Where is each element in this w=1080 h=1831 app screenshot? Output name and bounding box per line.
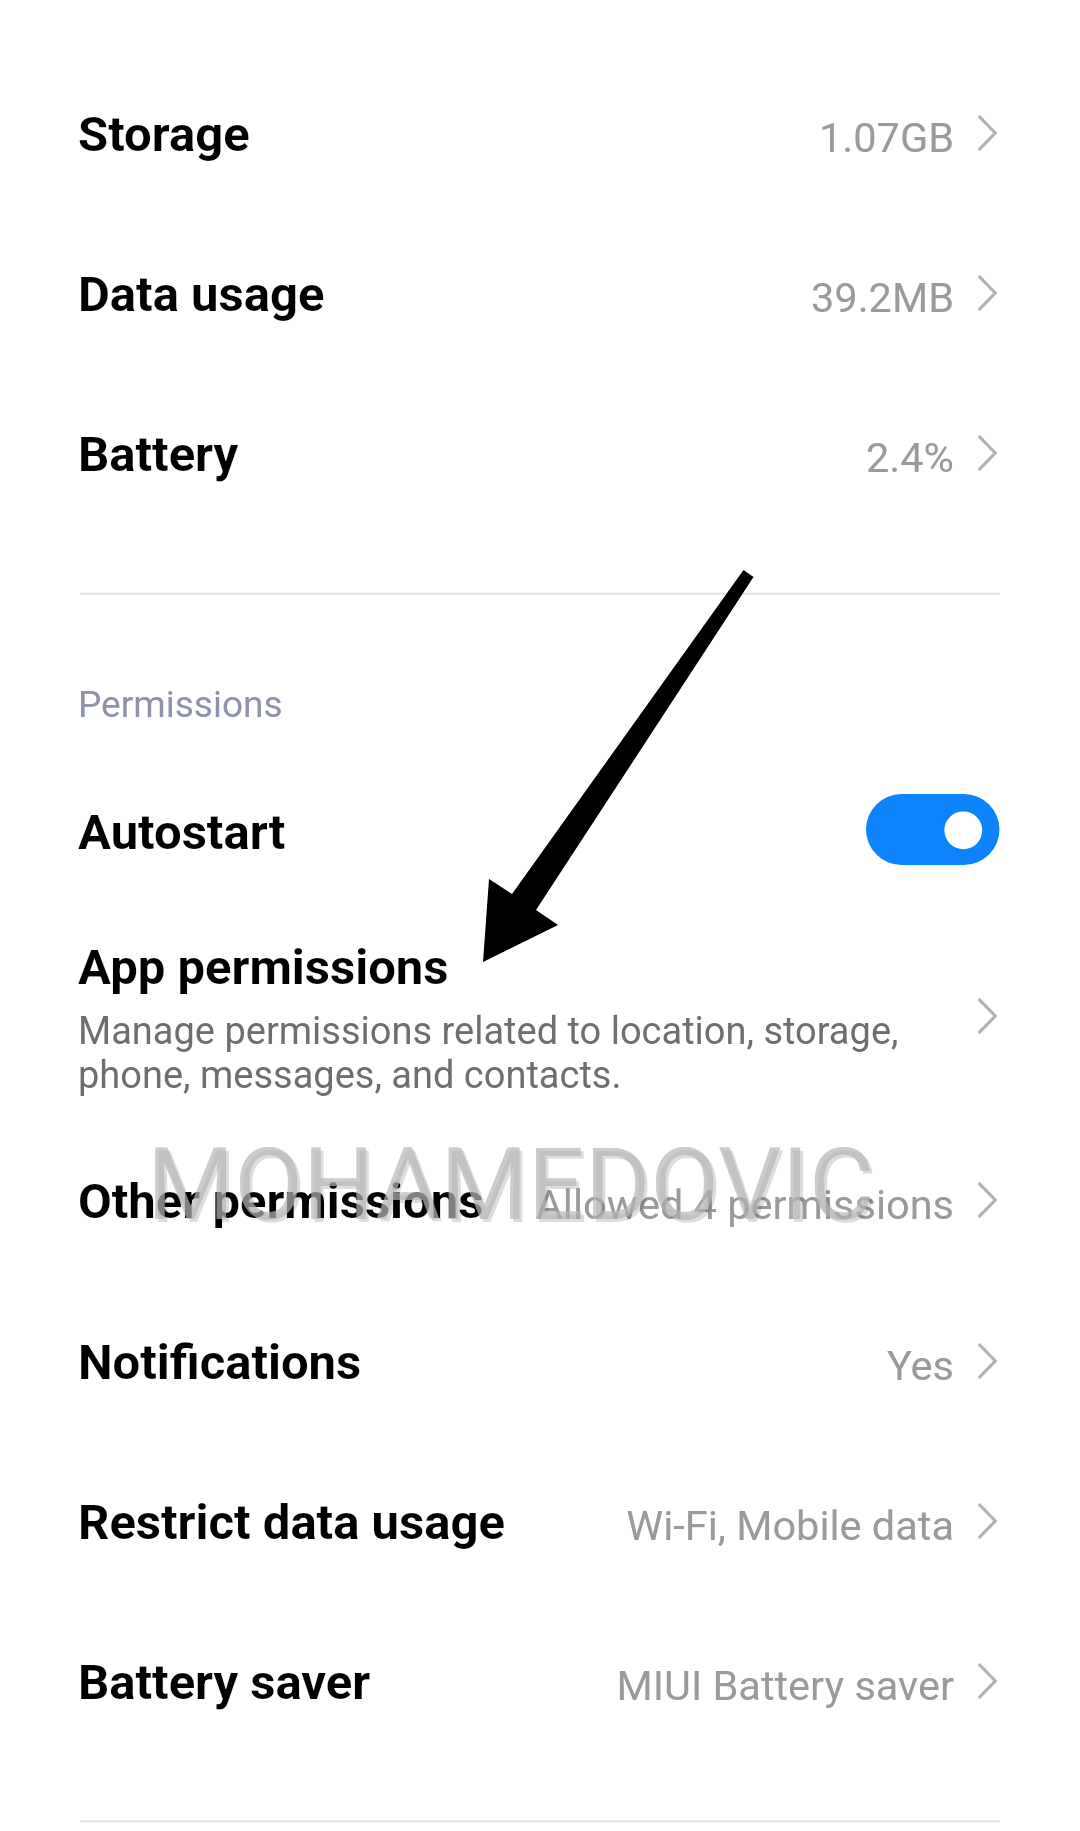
staticText: 39.2MB [0,273,954,333]
button[interactable]: Autostart [0,769,1080,929]
button[interactable]: Autostart, on [866,794,1000,866]
button[interactable]: Data usage [0,231,1080,391]
staticText: Data usage [78,266,325,323]
button[interactable]: Battery saver [0,1619,1080,1779]
staticText: Manage permissions related to location, … [78,1009,899,1097]
button[interactable]: Notifications [0,1299,1080,1459]
button[interactable]: Other permissions [0,1138,1080,1298]
staticText: 2.4% [0,433,954,493]
staticText: MIUI Battery saver [0,1661,954,1721]
staticText: Yes [0,1341,954,1401]
staticText: 1.07GB [0,113,954,173]
staticText: Restrict data usage [78,1494,505,1551]
staticText: MOHAMEDOVIC [147,1126,875,1243]
button[interactable]: App permissions [0,929,1080,1134]
staticText: Autostart [78,804,286,861]
staticText: Battery saver [78,1654,371,1711]
staticText: Storage [78,106,250,163]
staticText: Other permissions [78,1173,484,1230]
staticText: App permissions [78,939,449,996]
staticText: Permissions [78,683,283,726]
button[interactable]: Restrict data usage [0,1459,1080,1619]
staticText: Wi-Fi, Mobile data [0,1501,954,1561]
button[interactable]: Battery [0,391,1080,551]
staticText: Notifications [78,1334,362,1391]
staticText: Battery [78,426,239,483]
staticText: MOHAMEDOVIC [150,1129,878,1246]
staticText: Allowed 4 permissions [0,1180,954,1240]
button[interactable]: Storage [0,71,1080,231]
